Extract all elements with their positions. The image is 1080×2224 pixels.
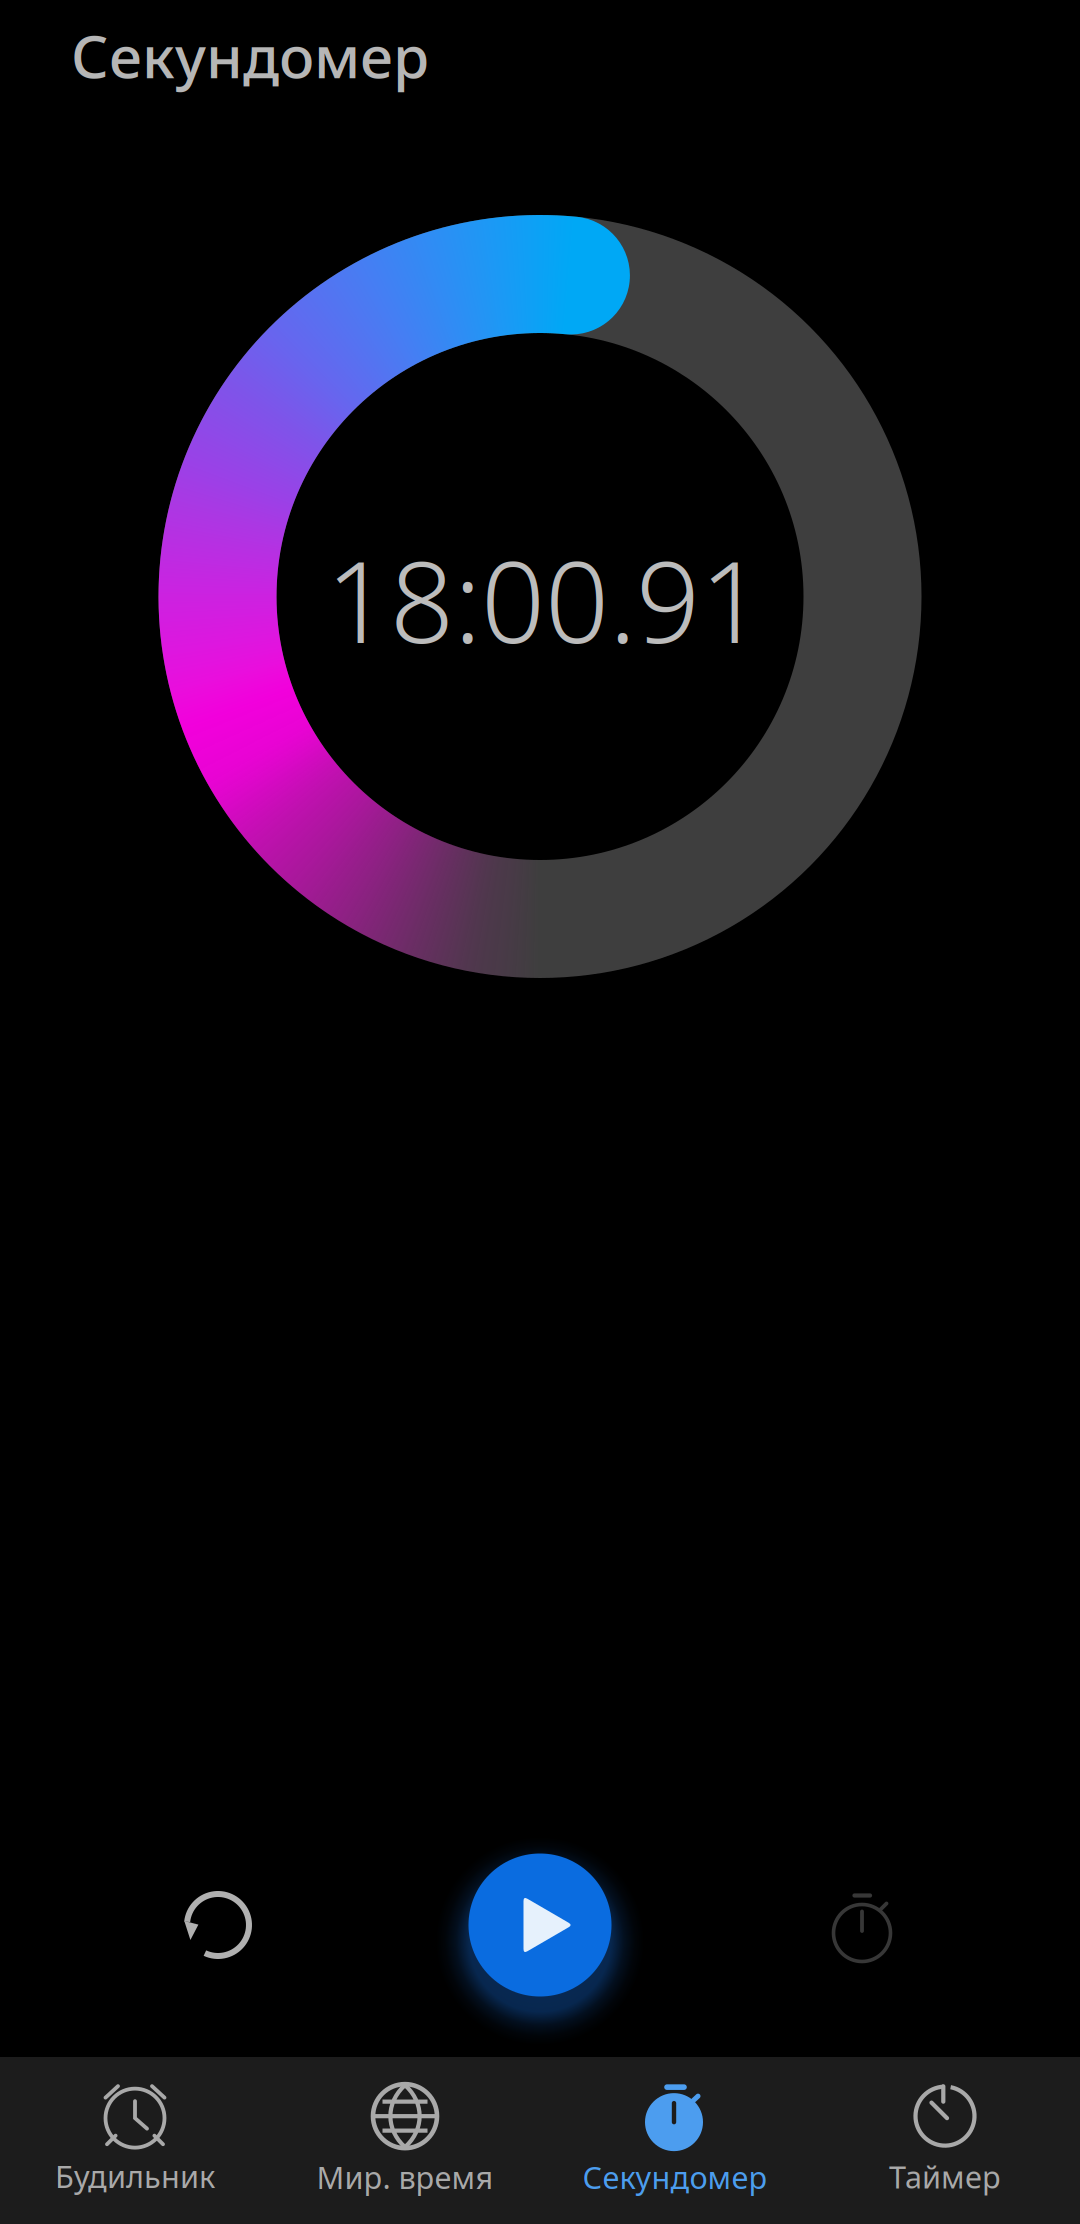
button[interactable]: Старт xyxy=(465,1850,615,2000)
staticText: Мир. время xyxy=(316,2157,493,2197)
staticText: Секундомер xyxy=(582,2157,767,2197)
button[interactable]: Круг xyxy=(787,1850,937,2000)
button[interactable]: Секундомер xyxy=(540,2079,810,2202)
button[interactable]: Мир. время xyxy=(270,2079,540,2202)
staticText: Таймер xyxy=(889,2156,1001,2197)
button[interactable]: Таймер xyxy=(810,2079,1080,2202)
button[interactable]: Сбросить xyxy=(143,1850,293,2000)
staticText: 18:00.91 xyxy=(326,525,764,674)
button[interactable]: Будильник xyxy=(0,2079,270,2202)
staticText: Секундомер xyxy=(71,16,429,94)
staticText: Будильник xyxy=(55,2156,215,2196)
